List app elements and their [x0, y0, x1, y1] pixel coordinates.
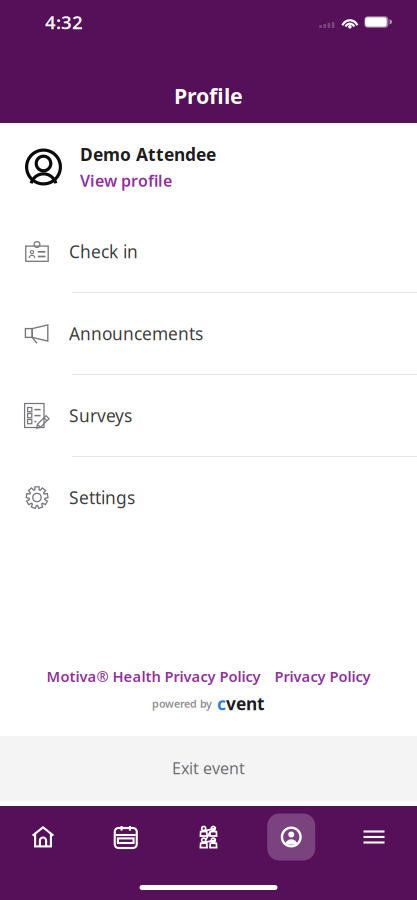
staticText: Settings: [69, 486, 135, 509]
button[interactable]: Settings: [0, 457, 417, 538]
staticText: Exit event: [172, 757, 245, 779]
staticText: Surveys: [69, 404, 132, 427]
staticText: View profile: [80, 170, 172, 191]
button[interactable]: Demo Attendee: [0, 123, 417, 211]
button[interactable]: Privacy Policy: [274, 666, 370, 686]
staticText: powered by: [152, 696, 212, 711]
button[interactable]: Check in: [0, 211, 417, 292]
button[interactable]: Announcements: [0, 293, 417, 374]
staticText: Announcements: [69, 322, 203, 345]
staticText: Profile: [174, 82, 243, 110]
staticText: vent: [226, 692, 265, 715]
button[interactable]: Motiva® Health Privacy Policy: [46, 666, 260, 686]
button[interactable]: Attendees: [179, 816, 237, 858]
button[interactable]: Surveys: [0, 375, 417, 456]
staticText: Privacy Policy: [274, 666, 370, 686]
button[interactable]: Profile: [262, 813, 320, 860]
staticText: 4:32: [45, 10, 83, 34]
staticText: Check in: [69, 240, 138, 263]
staticText: Motiva® Health Privacy Policy: [46, 666, 260, 686]
button[interactable]: Schedule: [97, 816, 155, 858]
button[interactable]: Home: [14, 816, 72, 858]
button[interactable]: More: [345, 816, 403, 858]
staticText: c: [217, 692, 226, 715]
button[interactable]: Exit event: [0, 736, 417, 801]
staticText: Demo Attendee: [80, 143, 216, 166]
